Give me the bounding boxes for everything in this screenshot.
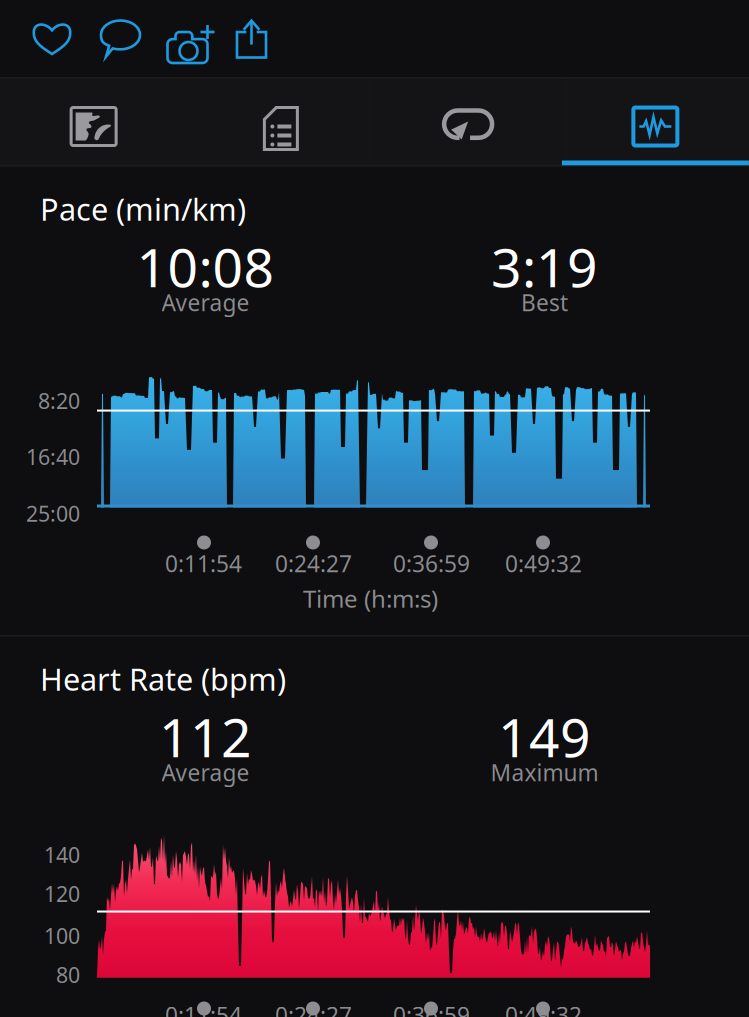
staticText: Maximum [490,757,598,787]
staticText: 0:49:32 [505,1000,582,1017]
button[interactable]: Like [20,6,84,71]
staticText: Average [161,287,249,317]
staticText: 10:08 [136,231,274,302]
button[interactable]: Share [225,5,278,71]
staticText: 0:11:54 [165,1000,242,1017]
button[interactable]: Laps [374,78,562,165]
staticText: Time (h:m:s) [303,582,438,614]
staticText: 120 [44,879,80,908]
staticText: 149 [498,701,591,772]
button[interactable]: Map [0,78,187,165]
staticText: 16:40 [26,442,80,471]
staticText: Best [521,287,568,317]
staticText: 0:11:54 [165,548,242,579]
staticText: Average [161,757,249,787]
button[interactable]: Charts [562,78,749,165]
staticText: 3:19 [491,231,598,302]
staticText: 80 [56,960,80,989]
staticText: 0:36:59 [393,1000,470,1017]
staticText: 112 [159,701,252,772]
button[interactable]: Comment [88,5,153,71]
button[interactable]: Add photo [153,5,222,71]
button[interactable]: Details [187,78,374,165]
staticText: 0:24:27 [275,548,352,579]
staticText: 140 [44,840,80,869]
staticText: Heart Rate (bpm) [40,658,286,699]
staticText: 0:36:59 [393,548,470,579]
staticText: 0:49:32 [505,548,582,579]
staticText: 8:20 [38,386,80,415]
staticText: Pace (min/km) [40,188,246,229]
staticText: 100 [44,922,80,950]
staticText: 25:00 [26,499,80,528]
staticText: 0:24:27 [275,1000,352,1017]
